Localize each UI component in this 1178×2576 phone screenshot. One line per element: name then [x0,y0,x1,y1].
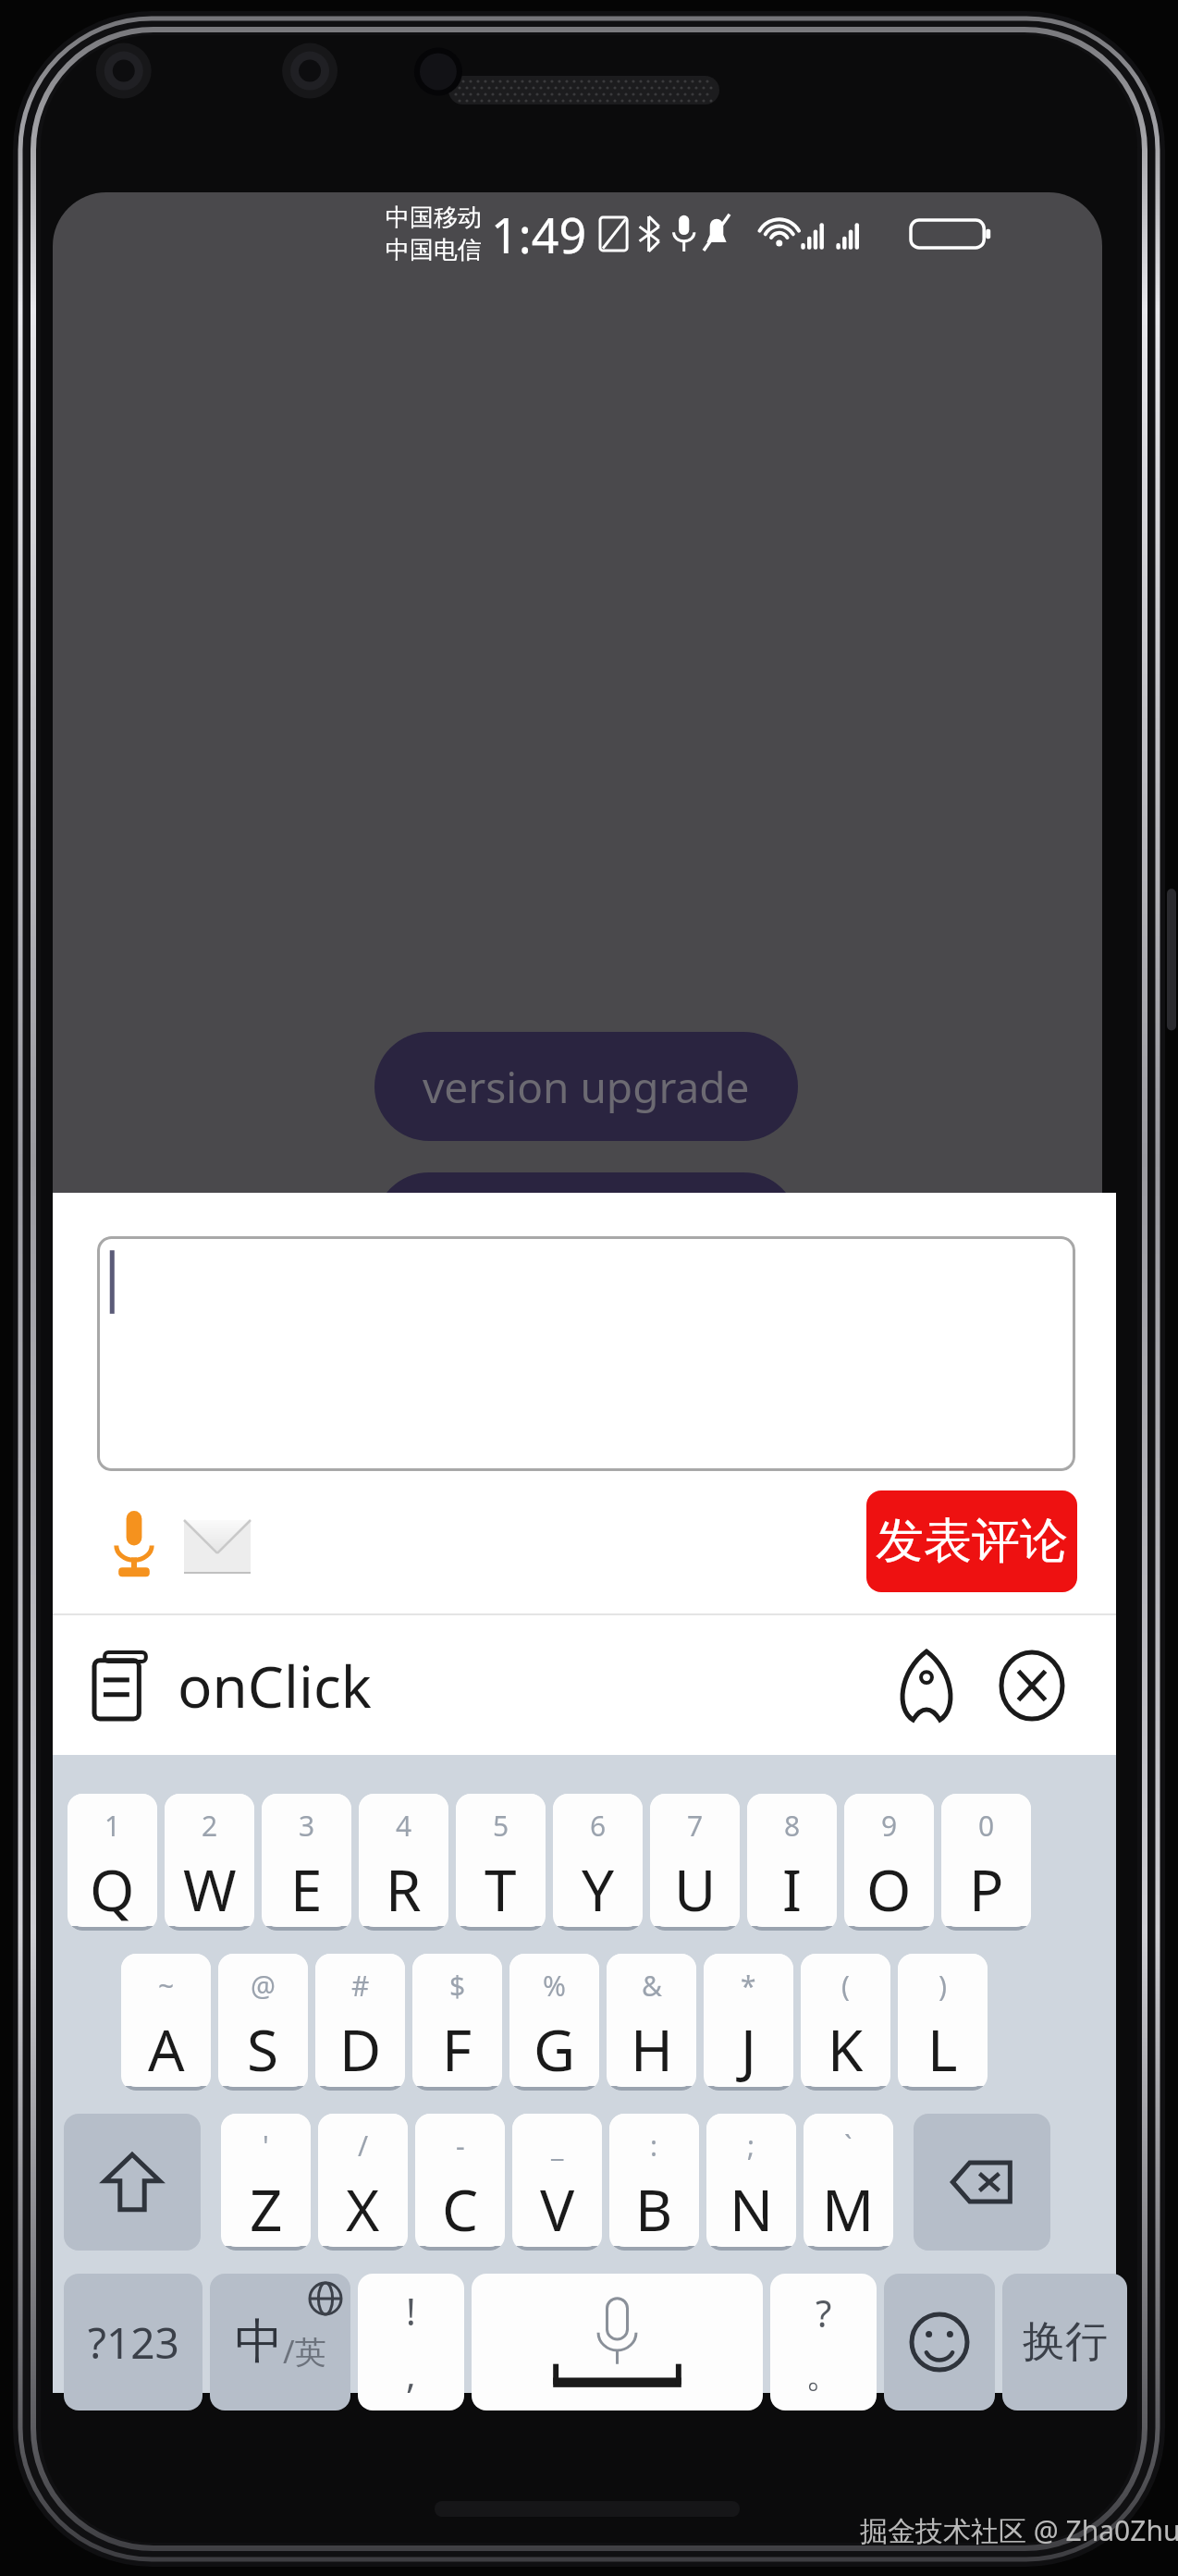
staticText: ' [263,2127,269,2165]
staticText: 掘金技术社区 @ Zha0Zhun [860,2511,1178,2549]
staticText: X [346,2170,380,2248]
button[interactable]: Input method [884,1643,969,1728]
button[interactable]: ! [358,2274,464,2410]
button[interactable]: 9 [844,1794,934,1931]
button[interactable]: $ [412,1954,502,2091]
button[interactable]: & [607,1954,696,2091]
button[interactable]: - [415,2114,505,2251]
button[interactable]: ?123 [64,2274,202,2410]
button[interactable]: / [318,2114,408,2251]
staticText: 1:49 [491,202,587,267]
staticText: F [442,2010,472,2088]
staticText: 中国移动 [386,202,482,233]
staticText: 5 [493,1807,509,1845]
staticText: ? [816,2288,832,2337]
button[interactable]: * [704,1954,793,2091]
button[interactable]: 8 [747,1794,837,1931]
staticText: U [674,1850,717,1928]
staticText: @ [251,1967,276,2005]
button[interactable]: Voice input [90,1500,178,1589]
staticText: 2 [202,1807,218,1845]
staticText: ( [841,1967,850,2005]
staticText: ! [406,2286,416,2336]
staticText: B [635,2170,673,2248]
staticText: $ [449,1967,466,2005]
staticText: 0 [978,1807,995,1845]
button[interactable]: version upgrade [374,1032,798,1141]
button[interactable]: 7 [650,1794,740,1931]
staticText: O [866,1850,912,1928]
staticText: Q [90,1850,135,1928]
staticText: 中国电信 [386,235,482,265]
button[interactable]: 3 [262,1794,351,1931]
button[interactable]: @ [218,1954,308,2091]
button[interactable]: 5 [456,1794,546,1931]
button[interactable]: ` [804,2114,893,2251]
staticText: L [927,2010,958,2088]
staticText: 4 [396,1807,412,1845]
button[interactable] [374,1172,798,1196]
button[interactable]: ; [706,2114,796,2251]
staticText: 8 [784,1807,801,1845]
button[interactable]: 中 [210,2274,350,2410]
staticText: onClick [178,1647,372,1724]
button[interactable]: Email [171,1505,264,1589]
button[interactable]: 6 [553,1794,643,1931]
button[interactable]: 0 [941,1794,1031,1931]
button[interactable]: 2 [165,1794,254,1931]
button[interactable]: 4 [359,1794,448,1931]
staticText: Y [582,1850,615,1928]
button[interactable]: : [609,2114,699,2251]
staticText: 。 [805,2350,842,2397]
staticText: ` [844,2127,853,2165]
button[interactable]: 1 [67,1794,157,1931]
button[interactable]: Emoji [884,2274,995,2410]
staticText: Z [250,2170,283,2248]
staticText: J [741,2010,756,2088]
button[interactable]: Space [472,2274,763,2410]
staticText: /英 [283,2330,326,2373]
staticText: K [828,2010,864,2088]
staticText: : [650,2127,658,2165]
staticText: H [631,2010,673,2088]
staticText: ~ [158,1967,175,2005]
staticText: 6 [590,1807,607,1845]
button[interactable]: ( [801,1954,890,2091]
staticText: 7 [687,1807,704,1845]
staticText: C [442,2170,479,2248]
staticText: ) [939,1967,947,2005]
button[interactable]: 换行 [1002,2274,1127,2410]
staticText: - [456,2127,465,2165]
staticText: _ [551,2127,564,2165]
staticText: I [782,1850,803,1928]
staticText: E [290,1850,323,1928]
staticText: T [485,1850,517,1928]
staticText: A [148,2010,185,2088]
staticText: ; [747,2127,755,2165]
staticText: 中 [235,2312,283,2373]
staticText: % [543,1967,566,2005]
button[interactable]: Close keyboard [989,1643,1074,1728]
button[interactable]: ) [898,1954,988,2091]
staticText: 换行 [1023,2315,1108,2369]
staticText: 1 [104,1807,121,1845]
staticText: 3 [299,1807,315,1845]
staticText: * [741,1967,756,2005]
staticText: R [386,1850,422,1928]
staticText: W [183,1850,237,1928]
staticText: , [406,2349,416,2398]
button[interactable]: % [509,1954,599,2091]
button[interactable]: ' [221,2114,311,2251]
button[interactable]: onClick [178,1615,884,1755]
button[interactable]: Shift [64,2114,201,2251]
button[interactable]: Backspace [914,2114,1050,2251]
button[interactable]: ~ [121,1954,211,2091]
button[interactable]: # [315,1954,405,2091]
button[interactable]: _ [512,2114,602,2251]
button[interactable]: ? [770,2274,877,2410]
staticText: P [969,1850,1004,1928]
button[interactable]: 发表评论 [866,1490,1077,1592]
button[interactable] [97,1236,1075,1471]
staticText: 9 [881,1807,898,1845]
staticText: # [351,1967,370,2005]
